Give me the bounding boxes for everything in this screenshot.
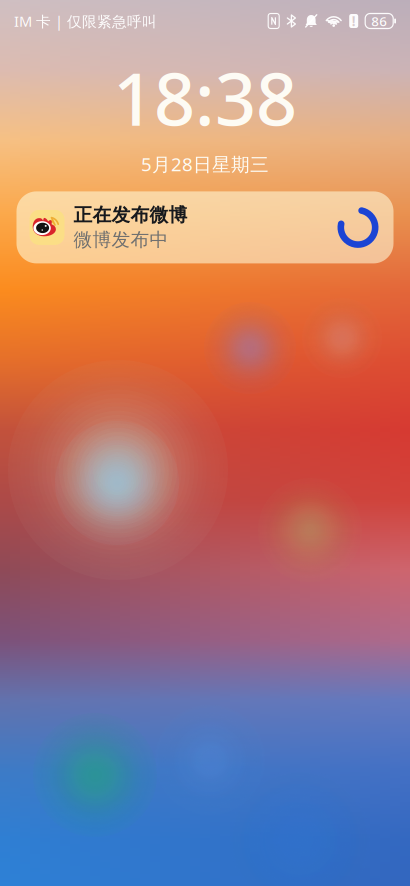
staticText: 5月28日星期三 xyxy=(141,152,269,176)
staticText: 微博发布中 xyxy=(73,228,168,251)
staticText: 18:38 xyxy=(113,50,297,146)
staticText: 正在发布微博 xyxy=(73,203,187,226)
staticText: 86 xyxy=(371,12,387,30)
button[interactable]: 正在发布微博 xyxy=(16,191,393,263)
staticText: ! xyxy=(352,12,356,30)
staticText: IM 卡 | 仅限紧急呼叫 xyxy=(14,11,157,31)
